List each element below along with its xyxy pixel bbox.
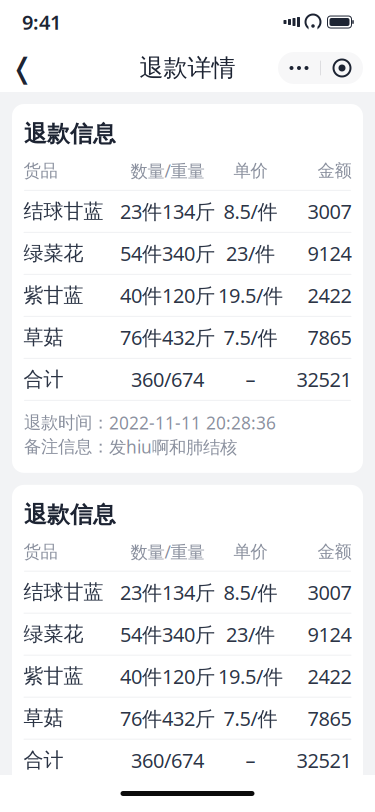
staticText: 7.5/件	[223, 705, 277, 731]
staticText: 2422	[307, 282, 351, 309]
staticText: 数量/重量	[130, 540, 204, 563]
staticText: 紫甘蓝	[23, 283, 83, 308]
staticText: 360/674	[131, 747, 204, 773]
staticText: 结球甘蓝	[23, 199, 103, 224]
button[interactable]: 返回	[0, 46, 44, 90]
staticText: 40件120斤	[120, 282, 215, 309]
staticText: 草菇	[23, 706, 63, 730]
staticText: 7.5/件	[223, 324, 277, 351]
staticText: 2022-11-11 20:28:36	[109, 411, 276, 434]
staticText: 金额	[317, 541, 351, 562]
staticText: 32521	[296, 747, 351, 773]
staticText: 360/674	[131, 366, 204, 393]
staticText: 76件432斤	[120, 324, 215, 351]
staticText: 23件134斤	[120, 579, 215, 605]
staticText: 紫甘蓝	[23, 664, 83, 688]
staticText: 7865	[307, 324, 351, 351]
staticText: 32521	[296, 366, 351, 393]
staticText: ❬	[10, 52, 33, 84]
staticText: 8.5/件	[223, 579, 277, 605]
staticText: 结球甘蓝	[23, 580, 103, 604]
staticText: 2022-11-11 20:28:36	[109, 792, 276, 812]
staticText: 7865	[307, 705, 351, 731]
staticText: 2422	[307, 663, 351, 689]
staticText: 货品	[23, 541, 57, 562]
staticText: 草菇	[23, 325, 63, 350]
staticText: 76件432斤	[120, 705, 215, 731]
staticText: 合计	[23, 367, 63, 392]
staticText: –	[245, 747, 255, 773]
staticText: 退款信息	[24, 120, 116, 148]
staticText: 9124	[307, 621, 351, 647]
staticText: 合计	[23, 748, 63, 772]
staticText: 9:41	[22, 9, 61, 35]
staticText: 54件340斤	[120, 240, 215, 267]
staticText: 40件120斤	[120, 663, 215, 689]
staticText: 3007	[307, 198, 351, 225]
staticText: 23件134斤	[120, 198, 215, 225]
staticText: 退款详情	[139, 53, 235, 83]
staticText: 绿菜花	[23, 622, 83, 646]
staticText: 数量/重量	[130, 159, 204, 182]
button[interactable]: 更多	[278, 52, 320, 84]
staticText: 货品	[23, 160, 57, 181]
button[interactable]: 首页	[321, 52, 363, 84]
staticText: 退款信息	[24, 501, 116, 529]
staticText: –	[245, 366, 255, 393]
staticText: 19.5/件	[218, 663, 283, 689]
staticText: 单价	[233, 541, 267, 562]
staticText: 退款时间：	[24, 412, 109, 433]
staticText: 金额	[317, 160, 351, 181]
staticText: 23/件	[226, 240, 275, 267]
staticText: 9124	[307, 240, 351, 267]
staticText: 绿菜花	[23, 241, 83, 266]
staticText: 54件340斤	[120, 621, 215, 647]
staticText: 3007	[307, 579, 351, 605]
staticText: 发hiu啊和肺结核	[109, 435, 237, 458]
staticText: 8.5/件	[223, 198, 277, 225]
staticText: 23/件	[226, 621, 275, 647]
staticText: 备注信息：	[24, 436, 109, 457]
staticText: 19.5/件	[218, 282, 283, 309]
staticText: 单价	[233, 160, 267, 181]
